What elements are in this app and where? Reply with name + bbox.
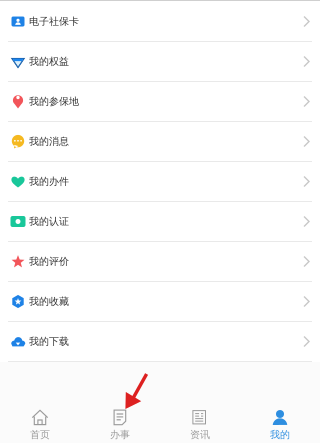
button[interactable]: 我的 — [240, 397, 320, 443]
button[interactable]: 办事 — [80, 397, 160, 443]
button[interactable]: 我的权益 — [0, 42, 320, 82]
staticText: 资讯 — [190, 428, 210, 441]
button[interactable]: 我的认证 — [0, 202, 320, 242]
staticText: 我的下载 — [29, 335, 69, 348]
staticText: 我的消息 — [29, 135, 69, 148]
button[interactable]: 电子社保卡 — [0, 2, 320, 42]
staticText: 电子社保卡 — [29, 15, 79, 28]
button[interactable]: 我的评价 — [0, 242, 320, 282]
staticText: 我的认证 — [29, 215, 69, 228]
staticText: 我的 — [270, 428, 290, 441]
button[interactable]: 资讯 — [160, 397, 240, 443]
button[interactable]: 我的收藏 — [0, 282, 320, 322]
staticText: 我的参保地 — [29, 95, 79, 108]
button[interactable]: 首页 — [0, 397, 80, 443]
staticText: 我的收藏 — [29, 295, 69, 308]
button[interactable]: 我的参保地 — [0, 82, 320, 122]
button[interactable]: 我的办件 — [0, 162, 320, 202]
button[interactable]: 我的消息 — [0, 122, 320, 162]
staticText: 办事 — [110, 428, 130, 441]
staticText: 我的评价 — [29, 255, 69, 268]
staticText: 首页 — [30, 428, 50, 441]
button[interactable]: 我的下载 — [0, 322, 320, 362]
staticText: 我的办件 — [29, 175, 69, 188]
staticText: 我的权益 — [29, 55, 69, 68]
